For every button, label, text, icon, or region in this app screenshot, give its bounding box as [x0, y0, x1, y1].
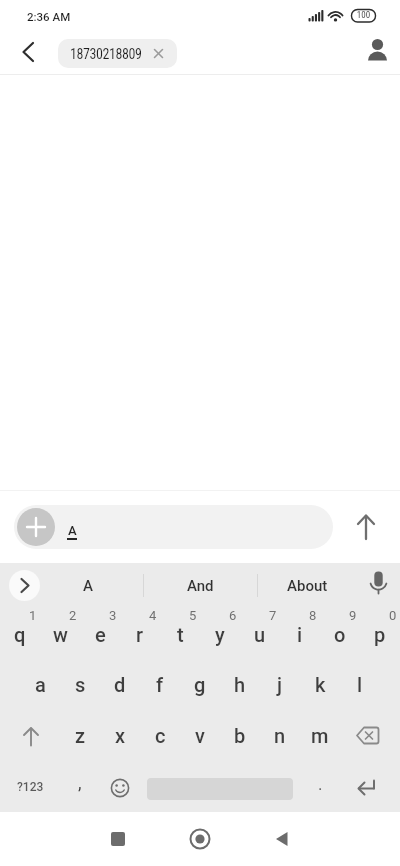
staticText: s: [75, 673, 86, 696]
button[interactable]: [356, 564, 400, 608]
button[interactable]: d: [100, 659, 140, 710]
staticText: e: [95, 623, 106, 646]
button[interactable]: g: [180, 659, 220, 710]
staticText: z: [75, 724, 86, 747]
button[interactable]: [340, 710, 400, 761]
button[interactable]: [344, 499, 400, 555]
staticText: a: [35, 673, 46, 696]
button[interactable]: [0, 710, 60, 761]
staticText: r: [136, 623, 144, 646]
button[interactable]: a: [20, 659, 60, 710]
button[interactable]: ,: [60, 761, 100, 812]
staticText: v: [195, 724, 205, 747]
button[interactable]: j: [260, 659, 300, 710]
staticText: .: [318, 774, 323, 794]
button[interactable]: o: [320, 608, 360, 659]
button[interactable]: [0, 30, 44, 74]
button[interactable]: s: [60, 659, 100, 710]
staticText: 2: [69, 608, 77, 623]
staticText: 2:36 AM: [27, 10, 71, 23]
button[interactable]: [356, 30, 400, 74]
button[interactable]: t: [160, 608, 200, 659]
staticText: 4: [149, 608, 157, 623]
button[interactable]: [260, 817, 304, 861]
button[interactable]: [340, 761, 400, 812]
staticText: k: [315, 673, 326, 696]
button[interactable]: n: [260, 710, 300, 761]
staticText: m: [311, 724, 329, 747]
button[interactable]: k: [300, 659, 340, 710]
staticText: c: [155, 724, 166, 747]
staticText: And: [187, 577, 214, 595]
staticText: 18730218809: [70, 46, 142, 62]
staticText: x: [115, 724, 126, 747]
staticText: 9: [349, 608, 357, 623]
button[interactable]: [140, 761, 300, 812]
staticText: i: [297, 623, 303, 646]
staticText: 3: [109, 608, 117, 623]
staticText: 5: [189, 608, 197, 623]
staticText: f: [156, 673, 164, 696]
button[interactable]: 18730218809: [58, 39, 177, 68]
button[interactable]: .: [300, 761, 340, 812]
staticText: o: [334, 623, 346, 646]
button[interactable]: About: [258, 563, 356, 608]
staticText: 7: [269, 608, 277, 623]
button[interactable]: ?123: [0, 761, 60, 812]
staticText: b: [234, 724, 246, 747]
staticText: j: [277, 673, 283, 696]
button[interactable]: [100, 761, 140, 812]
staticText: w: [53, 623, 68, 646]
button[interactable]: q: [0, 608, 40, 659]
staticText: ,: [78, 772, 82, 793]
staticText: p: [374, 623, 386, 646]
button[interactable]: [9, 570, 40, 601]
staticText: A: [68, 523, 77, 538]
button[interactable]: i: [280, 608, 320, 659]
button[interactable]: l: [340, 659, 380, 710]
staticText: h: [234, 673, 246, 696]
staticText: 100: [352, 10, 375, 21]
button[interactable]: b: [220, 710, 260, 761]
button[interactable]: c: [140, 710, 180, 761]
staticText: 8: [309, 608, 317, 623]
staticText: 6: [229, 608, 237, 623]
staticText: n: [274, 724, 286, 747]
staticText: u: [254, 623, 266, 646]
staticText: q: [14, 623, 26, 646]
staticText: t: [177, 623, 184, 646]
staticText: ?123: [17, 780, 44, 794]
button[interactable]: z: [60, 710, 100, 761]
button[interactable]: f: [140, 659, 180, 710]
button[interactable]: e: [80, 608, 120, 659]
button[interactable]: A: [50, 563, 126, 608]
button[interactable]: [96, 817, 140, 861]
staticText: About: [287, 577, 328, 595]
button[interactable]: u: [240, 608, 280, 659]
staticText: y: [215, 623, 225, 646]
button[interactable]: x: [100, 710, 140, 761]
button[interactable]: And: [144, 563, 257, 608]
staticText: l: [357, 673, 363, 696]
button[interactable]: [17, 508, 55, 546]
button[interactable]: v: [180, 710, 220, 761]
staticText: 1: [29, 608, 37, 623]
button[interactable]: h: [220, 659, 260, 710]
staticText: 0: [389, 608, 397, 623]
button[interactable]: r: [120, 608, 160, 659]
staticText: g: [194, 673, 206, 696]
staticText: A: [83, 577, 93, 595]
staticText: d: [114, 673, 126, 696]
button[interactable]: w: [40, 608, 80, 659]
button[interactable]: p: [360, 608, 400, 659]
button[interactable]: y: [200, 608, 240, 659]
button[interactable]: A: [14, 505, 333, 549]
button[interactable]: m: [300, 710, 340, 761]
button[interactable]: [178, 817, 222, 861]
